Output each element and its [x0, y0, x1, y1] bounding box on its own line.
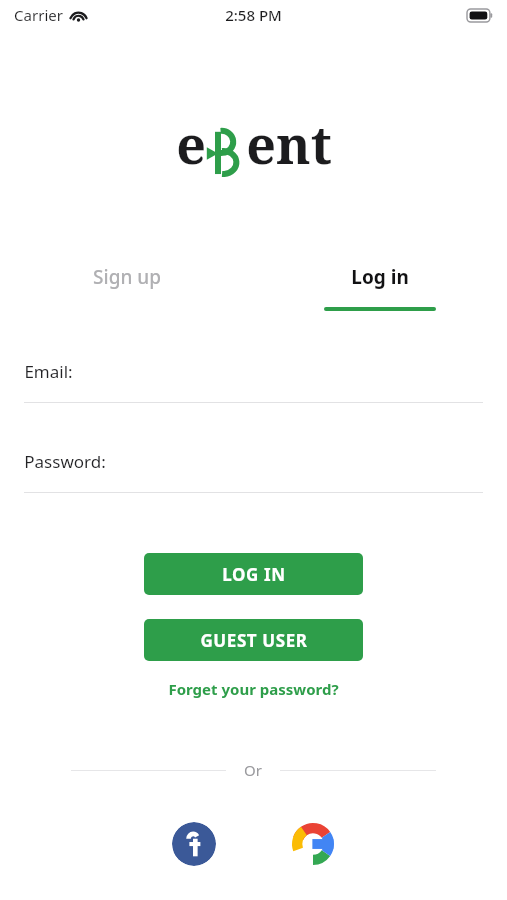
button[interactable]: Log in [253, 264, 507, 318]
staticText: Carrier [14, 5, 63, 25]
button[interactable]: LOG IN [144, 553, 363, 595]
staticText: Email: [24, 360, 73, 383]
staticText: ent [246, 108, 332, 179]
staticText: Forget your password? [168, 679, 339, 699]
staticText: GUEST USER [200, 629, 308, 652]
button[interactable]: Sign up [0, 264, 253, 318]
button[interactable]: Forget your password? [0, 677, 507, 701]
staticText: e [176, 108, 206, 179]
button[interactable]: GUEST USER [144, 619, 363, 661]
staticText: LOG IN [222, 563, 286, 586]
staticText: Log in [351, 264, 409, 290]
staticText: 2:58 PM [225, 5, 282, 25]
button[interactable]: Email: [24, 360, 483, 403]
button[interactable]: Password: [24, 450, 483, 493]
staticText: Or [244, 760, 262, 780]
button[interactable]: Sign in with Facebook [172, 822, 216, 866]
staticText: Password: [24, 450, 106, 473]
staticText: Sign up [93, 264, 161, 290]
button[interactable]: Sign in with Google [291, 822, 335, 866]
